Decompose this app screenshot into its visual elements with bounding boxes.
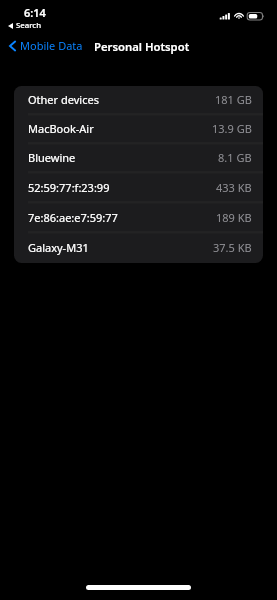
staticText: 433 KB <box>216 180 252 195</box>
staticText: 8.1 GB <box>218 150 252 165</box>
button[interactable]: Search <box>8 20 42 31</box>
button[interactable]: 52:59:77:f:23:99 <box>14 173 263 203</box>
staticText: Galaxy-M31 <box>28 240 89 255</box>
button[interactable]: MacBook-Air <box>14 115 263 144</box>
staticText: Other devices <box>28 92 99 107</box>
staticText: 181 GB <box>215 92 252 107</box>
staticText: MacBook-Air <box>28 121 94 136</box>
staticText: 7e:86:ae:e7:59:77 <box>28 210 118 225</box>
staticText: Bluewine <box>28 150 76 165</box>
staticText: 13.9 GB <box>212 121 252 136</box>
button[interactable]: 7e:86:ae:e7:59:77 <box>14 203 263 233</box>
staticText: Search <box>16 20 42 31</box>
button[interactable]: Bluewine <box>14 144 263 173</box>
staticText: Personal Hotspot <box>94 39 190 54</box>
button[interactable]: Mobile Data <box>0 36 87 55</box>
staticText: 37.5 KB <box>213 240 252 255</box>
staticText: 52:59:77:f:23:99 <box>28 180 110 195</box>
button[interactable]: Galaxy-M31 <box>14 233 263 263</box>
other: Cellular signal, Wi-Fi and battery statu… <box>218 9 266 22</box>
staticText: 189 KB <box>216 210 252 225</box>
button[interactable]: Other devices <box>14 86 263 115</box>
staticText: Mobile Data <box>20 38 83 53</box>
staticText: 6:14 <box>24 5 46 20</box>
